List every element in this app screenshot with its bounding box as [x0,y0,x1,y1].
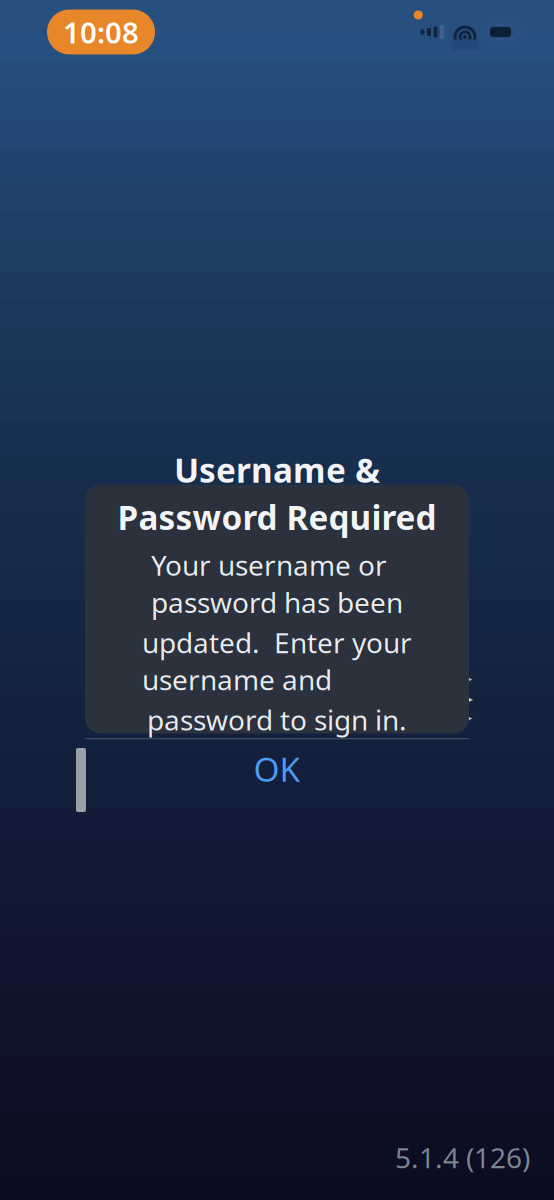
staticText: ▸ [463,687,473,709]
staticText: ▸ [463,707,472,727]
staticText: 5.1.4 (126) [395,1139,530,1176]
staticText: Password Required [117,495,436,539]
staticText: 10:08 [63,12,139,51]
staticText: Username & [174,448,380,492]
button[interactable]: OK [85,739,469,798]
staticText: OK [253,747,300,791]
staticText: ▸ [463,668,472,688]
staticText: Your username or password has been [151,546,403,621]
staticText: password to sign in. [147,701,407,738]
staticText: updated. Enter your username and [142,624,412,698]
